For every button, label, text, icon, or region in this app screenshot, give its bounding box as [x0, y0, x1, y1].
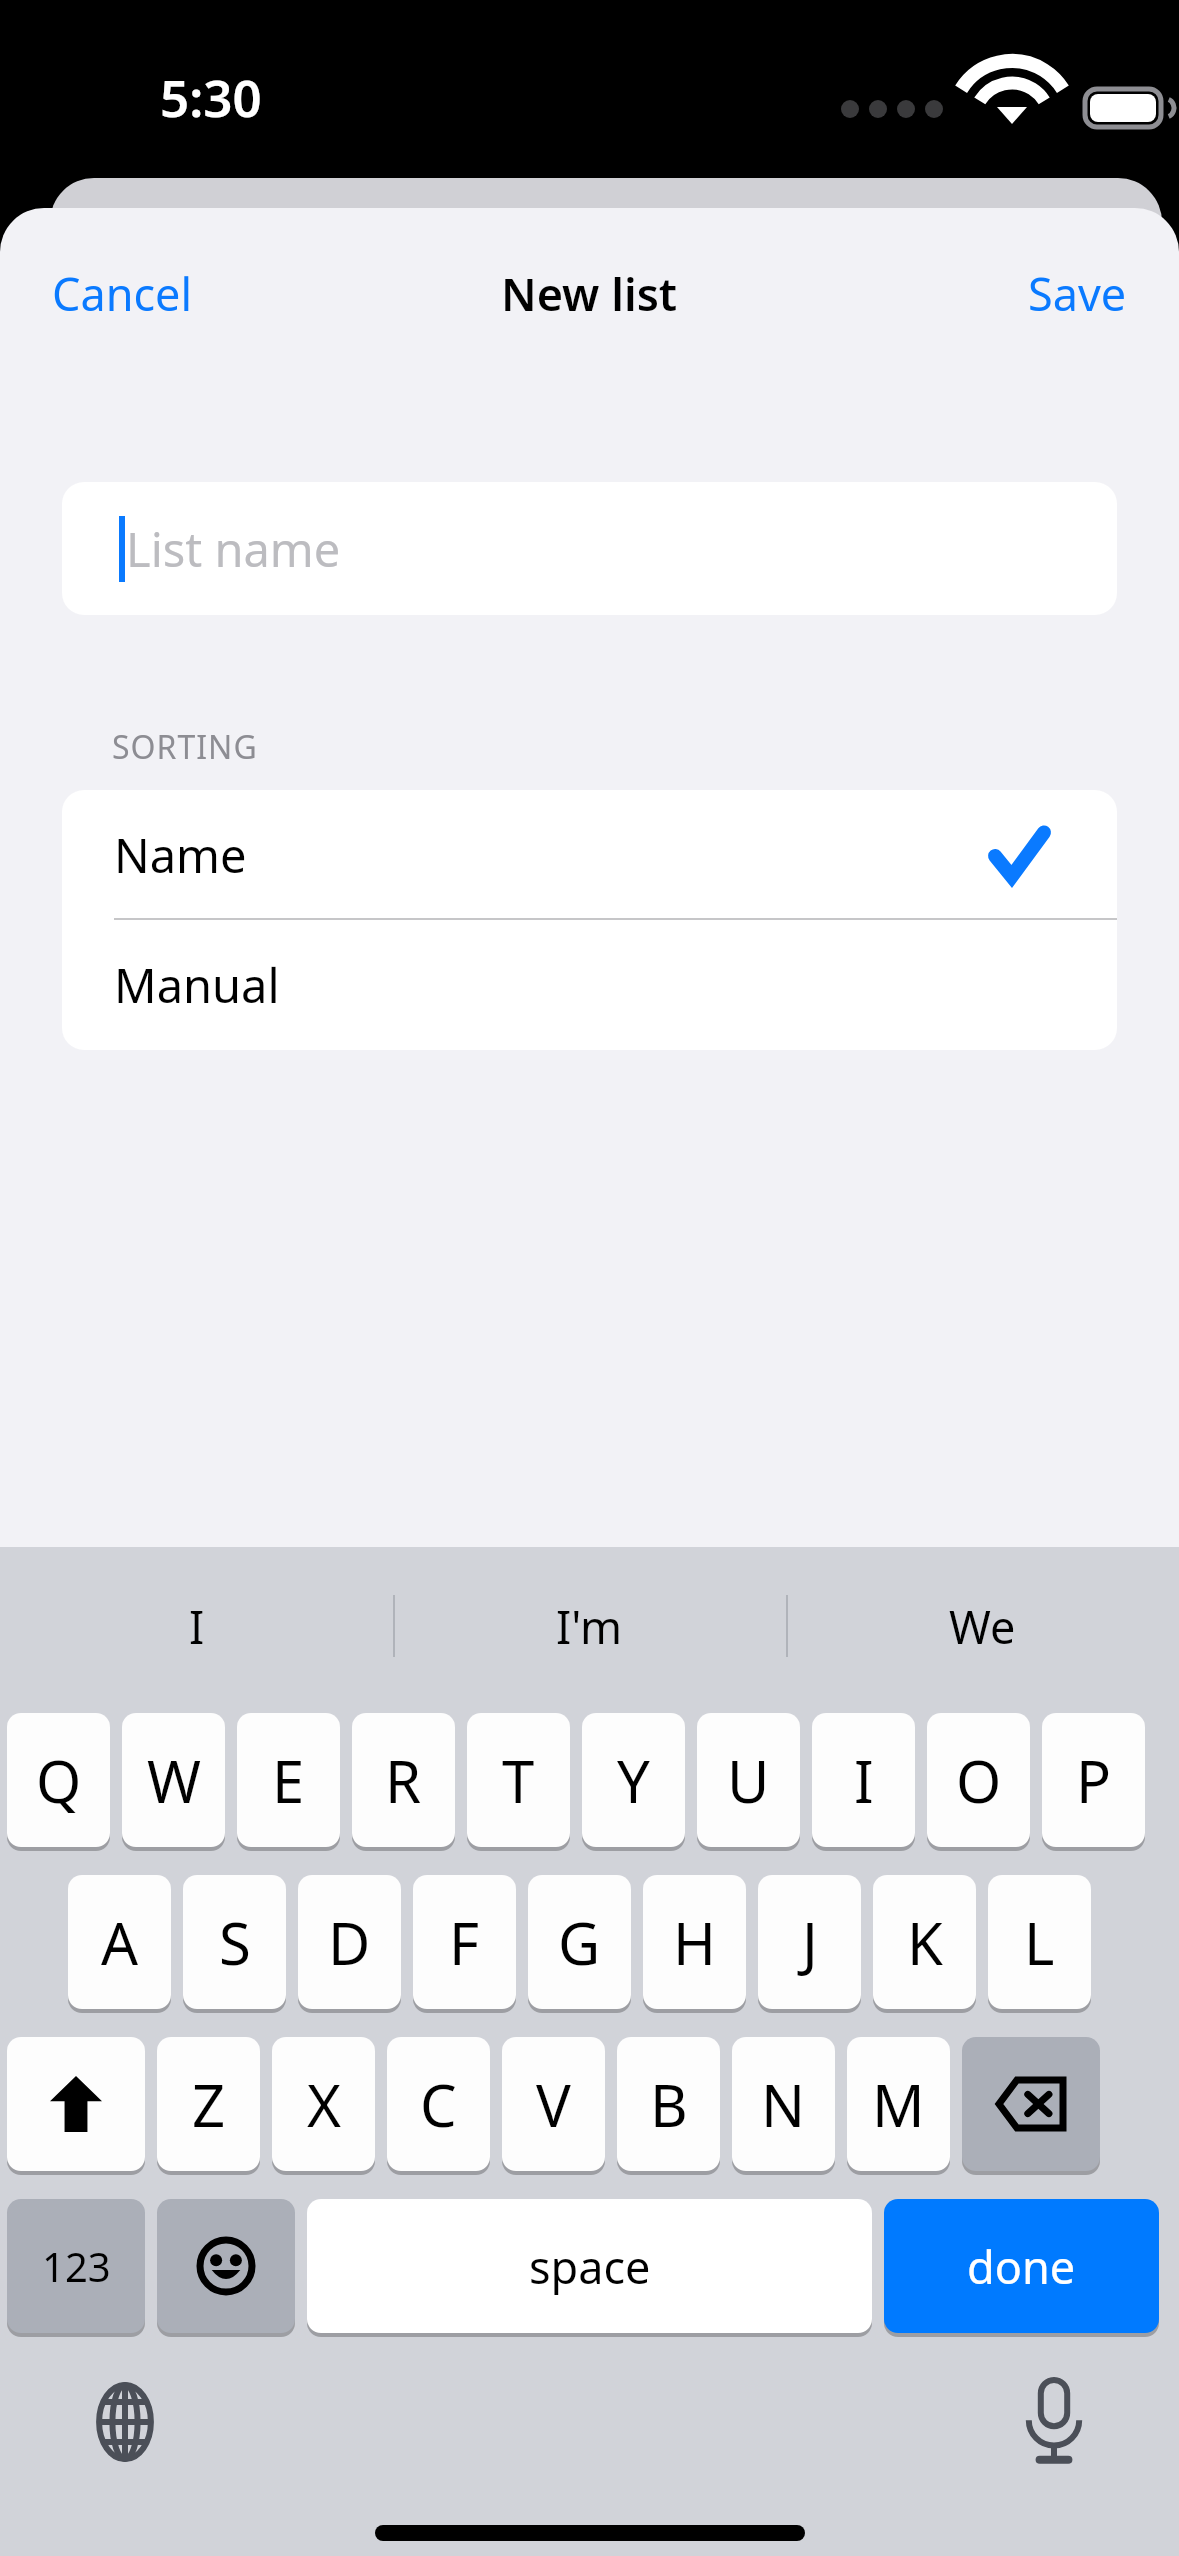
button[interactable]: Manual — [62, 920, 1117, 1050]
button[interactable]: Dictation — [1009, 2377, 1099, 2467]
button[interactable]: Z — [157, 2037, 260, 2171]
button[interactable]: M — [847, 2037, 950, 2171]
button[interactable]: P — [1042, 1713, 1145, 1847]
button[interactable]: Emoji — [157, 2199, 295, 2333]
staticText: Z — [192, 2065, 226, 2144]
staticText: N — [761, 2065, 806, 2144]
button[interactable]: L — [988, 1875, 1091, 2009]
button[interactable]: Change keyboard — [80, 2377, 170, 2467]
button[interactable]: T — [467, 1713, 570, 1847]
staticText: C — [420, 2065, 457, 2144]
staticText: X — [307, 2065, 341, 2144]
staticText: Cancel — [52, 263, 193, 324]
button[interactable]: space — [307, 2199, 872, 2333]
button[interactable]: Backspace — [962, 2037, 1100, 2171]
staticText: Q — [36, 1741, 82, 1820]
staticText: J — [802, 1903, 818, 1982]
button[interactable]: J — [758, 1875, 861, 2009]
button[interactable]: I'm — [393, 1547, 786, 1705]
button[interactable]: W — [122, 1713, 225, 1847]
staticText: I — [189, 1596, 205, 1657]
staticText: P — [1076, 1741, 1112, 1820]
staticText: I — [854, 1741, 874, 1820]
staticText: A — [101, 1903, 139, 1982]
staticText: New list — [501, 263, 678, 324]
button[interactable]: X — [272, 2037, 375, 2171]
button[interactable]: F — [413, 1875, 516, 2009]
staticText: T — [502, 1741, 535, 1820]
staticText: R — [385, 1741, 422, 1820]
button[interactable]: Q — [7, 1713, 110, 1847]
button[interactable]: D — [298, 1875, 401, 2009]
staticText: space — [529, 2236, 651, 2297]
staticText: Name — [114, 823, 247, 887]
staticText: W — [147, 1741, 201, 1820]
staticText: E — [272, 1741, 305, 1820]
button[interactable]: V — [502, 2037, 605, 2171]
staticText: I'm — [556, 1596, 623, 1657]
button[interactable]: Cancel — [34, 251, 211, 336]
staticText: D — [328, 1903, 371, 1982]
button[interactable]: Y — [582, 1713, 685, 1847]
button[interactable]: K — [873, 1875, 976, 2009]
staticText: We — [949, 1596, 1016, 1657]
staticText: V — [536, 2065, 571, 2144]
button[interactable]: U — [697, 1713, 800, 1847]
staticText: O — [956, 1741, 1002, 1820]
staticText: Save — [1028, 263, 1127, 324]
staticText: F — [449, 1903, 480, 1982]
button[interactable]: R — [352, 1713, 455, 1847]
button[interactable]: We — [786, 1547, 1179, 1705]
button[interactable]: List name — [62, 482, 1117, 615]
staticText: 5:30 — [160, 62, 262, 131]
staticText: G — [558, 1903, 601, 1982]
staticText: M — [872, 2065, 925, 2144]
staticText: U — [727, 1741, 770, 1820]
button[interactable]: O — [927, 1713, 1030, 1847]
button[interactable]: B — [617, 2037, 720, 2171]
staticText: H — [673, 1903, 716, 1982]
button[interactable]: I — [812, 1713, 915, 1847]
button[interactable]: Save — [1010, 251, 1145, 336]
staticText: S — [219, 1903, 251, 1982]
staticText: Y — [617, 1741, 650, 1820]
button[interactable]: S — [183, 1875, 286, 2009]
button[interactable]: done — [884, 2199, 1159, 2333]
button[interactable]: 123 — [7, 2199, 145, 2333]
staticText: L — [1024, 1903, 1055, 1982]
button[interactable]: H — [643, 1875, 746, 2009]
button[interactable]: C — [387, 2037, 490, 2171]
button[interactable]: G — [528, 1875, 631, 2009]
staticText: List name — [126, 517, 341, 581]
staticText: SORTING — [112, 725, 258, 769]
button[interactable]: N — [732, 2037, 835, 2171]
staticText: 123 — [42, 2239, 111, 2293]
button[interactable]: E — [237, 1713, 340, 1847]
button[interactable]: I — [0, 1547, 393, 1705]
staticText: done — [967, 2236, 1076, 2297]
staticText: B — [650, 2065, 688, 2144]
staticText: K — [907, 1903, 943, 1982]
button[interactable]: Shift — [7, 2037, 145, 2171]
staticText: Manual — [114, 953, 280, 1017]
button[interactable]: Name — [62, 790, 1117, 920]
button[interactable]: A — [68, 1875, 171, 2009]
